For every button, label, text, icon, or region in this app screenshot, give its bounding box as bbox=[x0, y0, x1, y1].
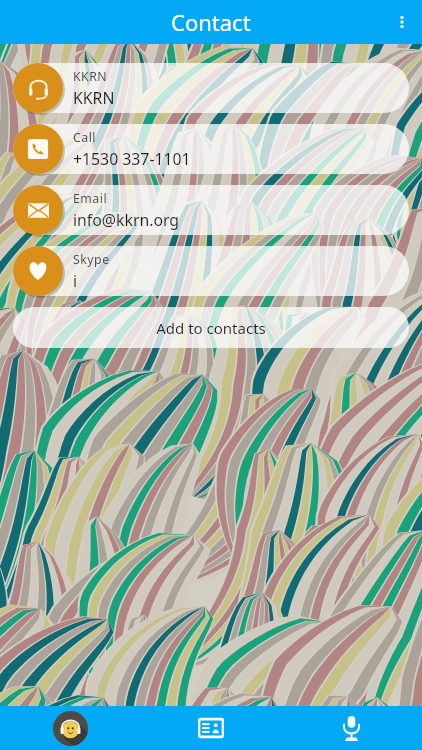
button[interactable]: Radio bbox=[0, 706, 140, 750]
button[interactable] bbox=[13, 246, 409, 296]
staticText: Contact bbox=[171, 7, 251, 37]
staticText: info@kkrn.org bbox=[73, 209, 180, 231]
button[interactable] bbox=[13, 185, 409, 235]
button[interactable]: Contacts bbox=[140, 706, 281, 750]
staticText: Call bbox=[73, 129, 97, 146]
staticText: Skype bbox=[73, 251, 110, 268]
button[interactable] bbox=[13, 63, 409, 113]
staticText: Add to contacts bbox=[156, 318, 266, 338]
staticText: Email bbox=[73, 190, 108, 207]
staticText: KKRN bbox=[73, 68, 108, 85]
staticText: +1530 337-1101 bbox=[73, 148, 191, 170]
button[interactable]: More options bbox=[382, 0, 422, 44]
button[interactable] bbox=[13, 124, 409, 174]
button[interactable]: Voice search bbox=[281, 706, 422, 750]
button[interactable]: Add to contacts bbox=[13, 307, 409, 348]
staticText: KKRN bbox=[73, 87, 115, 109]
staticText: i bbox=[73, 270, 78, 292]
